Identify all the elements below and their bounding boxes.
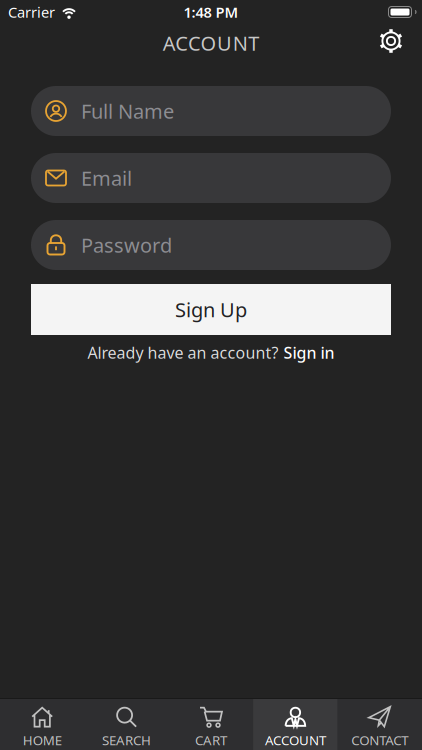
staticText: HOME [23,731,62,749]
button[interactable]: CART [169,699,253,750]
staticText: Password [81,232,172,258]
staticText: Full Name [81,98,174,124]
button[interactable]: Password [31,220,391,270]
button[interactable]: Email [31,153,391,203]
button[interactable]: CONTACT [338,699,422,750]
staticText: Sign Up [175,296,247,323]
button[interactable]: Already have an account? [87,342,334,363]
button[interactable]: ACCOUNT [253,699,338,750]
staticText: SEARCH [102,731,151,749]
staticText: Email [81,165,132,191]
button[interactable]: SEARCH [84,699,169,750]
button[interactable]: Settings [377,27,405,55]
staticText: CART [195,731,227,749]
button[interactable]: HOME [0,699,84,750]
staticText: ACCOUNT [265,731,326,749]
staticText: Carrier [8,2,55,22]
staticText: CONTACT [351,731,408,749]
button[interactable]: Sign Up [31,284,391,335]
staticText: 1:48 PM [183,2,238,22]
button[interactable]: Full Name [31,86,391,136]
staticText: Sign in [283,342,334,363]
staticText: ACCOUNT [163,30,259,56]
staticText: Already have an account? [87,342,278,363]
